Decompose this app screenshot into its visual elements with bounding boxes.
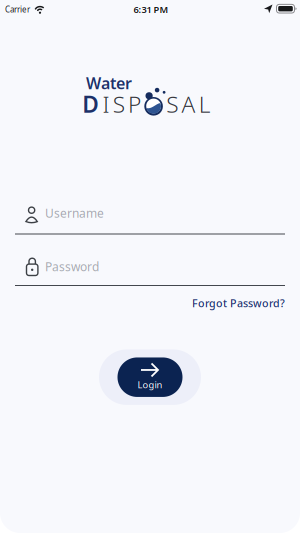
staticText: Login — [137, 378, 162, 391]
staticText: P — [128, 89, 141, 119]
button[interactable]: Forgot Password? — [15, 296, 285, 310]
staticText: D — [82, 89, 99, 119]
button[interactable]: Username — [15, 200, 285, 235]
staticText: Username — [45, 205, 104, 221]
staticText: Password — [45, 258, 99, 274]
staticText: Water — [86, 72, 132, 94]
staticText: S — [166, 89, 178, 119]
button[interactable]: Login — [99, 349, 201, 405]
staticText: 6:31 PM — [133, 3, 168, 16]
button[interactable]: Password — [15, 252, 285, 288]
staticText: Carrier — [5, 4, 30, 15]
staticText: A — [181, 89, 195, 119]
staticText: Forgot Password? — [192, 296, 285, 310]
staticText: I — [102, 89, 109, 119]
staticText: S — [113, 89, 125, 119]
staticText: L — [199, 89, 211, 119]
